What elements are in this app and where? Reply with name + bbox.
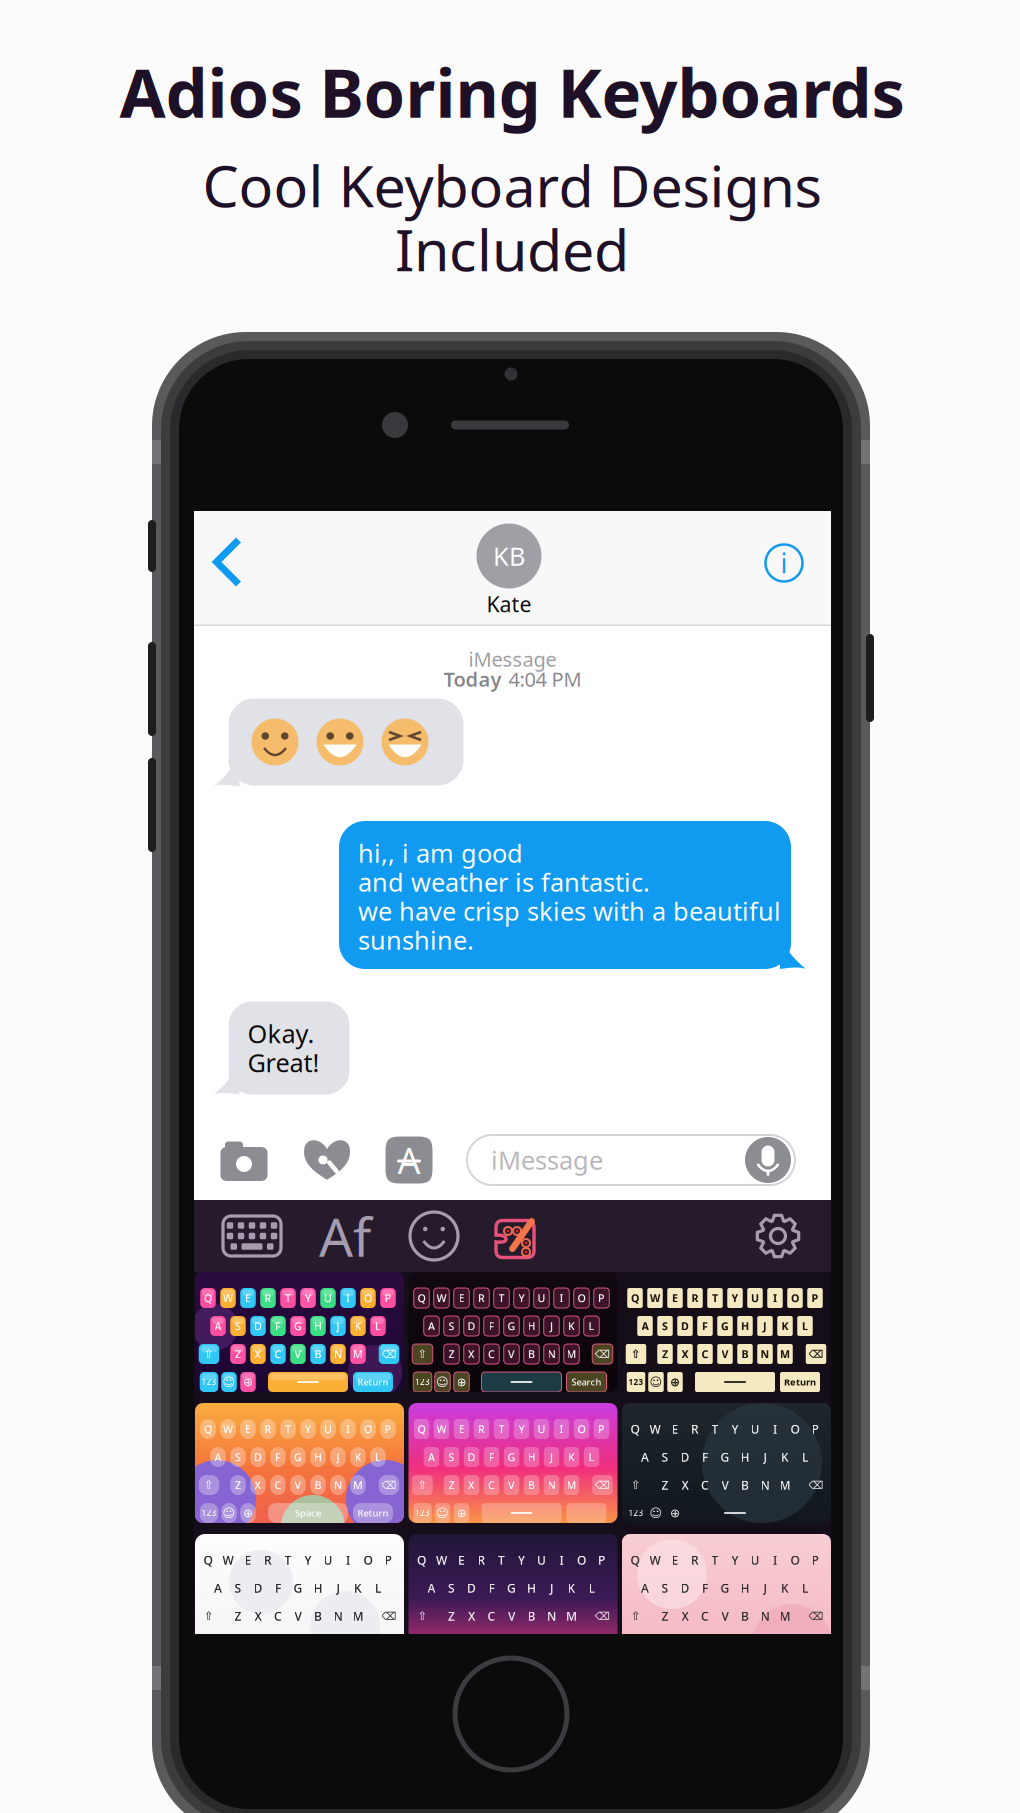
staticText: A <box>214 1319 221 1333</box>
staticText: P <box>384 1422 391 1436</box>
staticText: and weather is fantastic. <box>358 865 650 899</box>
staticText: N <box>760 1347 769 1361</box>
staticText: R <box>264 1422 271 1436</box>
staticText: iMessage <box>468 646 556 672</box>
staticText: O <box>577 1291 585 1305</box>
staticText: D <box>254 1450 262 1464</box>
staticText: V <box>508 1347 515 1361</box>
staticText: C <box>274 1478 281 1492</box>
staticText: A <box>428 1319 435 1333</box>
staticText: K <box>354 1319 361 1333</box>
button[interactable]: Settings <box>751 1209 805 1263</box>
button[interactable]: Keyboard theme 8 <box>408 1534 617 1654</box>
button[interactable]: Themes <box>487 1209 545 1263</box>
staticText: P <box>811 1552 818 1568</box>
button[interactable]: Keyboard theme 3 <box>622 1272 831 1392</box>
staticText: P <box>811 1291 818 1305</box>
button[interactable]: Camera <box>216 1134 272 1186</box>
staticText: D <box>680 1580 689 1596</box>
staticText: ⊕ <box>456 1506 466 1520</box>
staticText: H <box>314 1319 322 1333</box>
staticText: U <box>323 1552 332 1568</box>
button[interactable]: Keyboard theme 7 <box>195 1534 404 1654</box>
staticText: F <box>275 1450 281 1464</box>
staticText: T <box>498 1552 505 1568</box>
staticText: O <box>364 1422 372 1436</box>
staticText: Great! <box>247 1045 319 1079</box>
button[interactable]: Fonts <box>314 1209 376 1263</box>
staticText: N <box>547 1478 555 1492</box>
staticText: Y <box>305 1422 311 1436</box>
button[interactable]: Keyboard theme 2 <box>408 1272 617 1392</box>
staticText: U <box>750 1421 759 1437</box>
staticText: T <box>285 1291 291 1305</box>
staticText: I <box>346 1291 350 1305</box>
staticText: W <box>222 1552 233 1568</box>
staticText: M <box>352 1608 363 1624</box>
staticText: C <box>701 1608 709 1624</box>
staticText: F <box>702 1319 708 1333</box>
staticText: Z <box>662 1347 668 1361</box>
staticText: L <box>588 1450 594 1464</box>
button[interactable]: Emoji <box>407 1209 461 1263</box>
staticText: Cool Keyboard Designs <box>202 147 821 223</box>
staticText: A <box>428 1450 435 1464</box>
staticText: M <box>780 1347 790 1361</box>
staticText: N <box>334 1478 342 1492</box>
staticText: A <box>427 1580 435 1596</box>
button[interactable]: Back <box>189 514 262 610</box>
staticText: O <box>363 1552 372 1568</box>
staticText: E <box>671 1421 678 1437</box>
button[interactable]: Keyboard theme 1 <box>195 1272 404 1392</box>
button[interactable]: Details <box>753 532 815 594</box>
staticText: V <box>721 1347 728 1361</box>
staticText: I <box>773 1552 777 1568</box>
staticText: T <box>285 1422 291 1436</box>
button[interactable]: Keyboard theme 6 <box>622 1403 831 1523</box>
staticText: 123 <box>201 1508 216 1518</box>
staticText: H <box>741 1319 749 1333</box>
button[interactable]: Keyboard theme 5 <box>408 1403 617 1523</box>
staticText: B <box>314 1478 321 1492</box>
button[interactable]: Keyboard theme 4 <box>195 1403 404 1523</box>
staticText: M <box>353 1347 363 1361</box>
staticText: J <box>336 1319 339 1333</box>
staticText: C <box>274 1347 281 1361</box>
staticText: H <box>527 1580 536 1596</box>
staticText: O <box>790 1552 799 1568</box>
button[interactable]: Apps <box>381 1134 437 1186</box>
staticText: Z <box>235 1347 241 1361</box>
staticText: B <box>314 1608 322 1624</box>
button[interactable]: Keyboard <box>221 1209 283 1263</box>
button[interactable]: Digital Touch <box>299 1134 355 1186</box>
staticText: L <box>588 1319 594 1333</box>
button[interactable]: iMessage <box>467 1134 795 1186</box>
staticText: V <box>294 1347 301 1361</box>
staticText: X <box>254 1347 261 1361</box>
staticText: Q <box>203 1552 212 1568</box>
staticText: W <box>223 1422 233 1436</box>
staticText: sunshine. <box>358 923 474 957</box>
staticText: F <box>702 1449 708 1465</box>
button[interactable]: Keyboard theme 9 <box>622 1534 831 1654</box>
staticText: N <box>760 1608 769 1624</box>
staticText: Q <box>204 1291 212 1305</box>
staticText: U <box>750 1552 759 1568</box>
staticText: V <box>508 1478 515 1492</box>
staticText: S <box>448 1580 455 1596</box>
staticText: KB <box>493 539 525 573</box>
staticText: S <box>235 1450 241 1464</box>
staticText: H <box>314 1450 322 1464</box>
staticText: N <box>333 1608 342 1624</box>
staticText: G <box>721 1319 729 1333</box>
button[interactable]: Kate, contact photo <box>474 521 544 591</box>
staticText: Y <box>731 1291 738 1305</box>
staticText: N <box>547 1347 555 1361</box>
staticText: we have crisp skies with a beautiful <box>358 894 781 928</box>
staticText: X <box>254 1478 261 1492</box>
staticText: F <box>275 1580 281 1596</box>
